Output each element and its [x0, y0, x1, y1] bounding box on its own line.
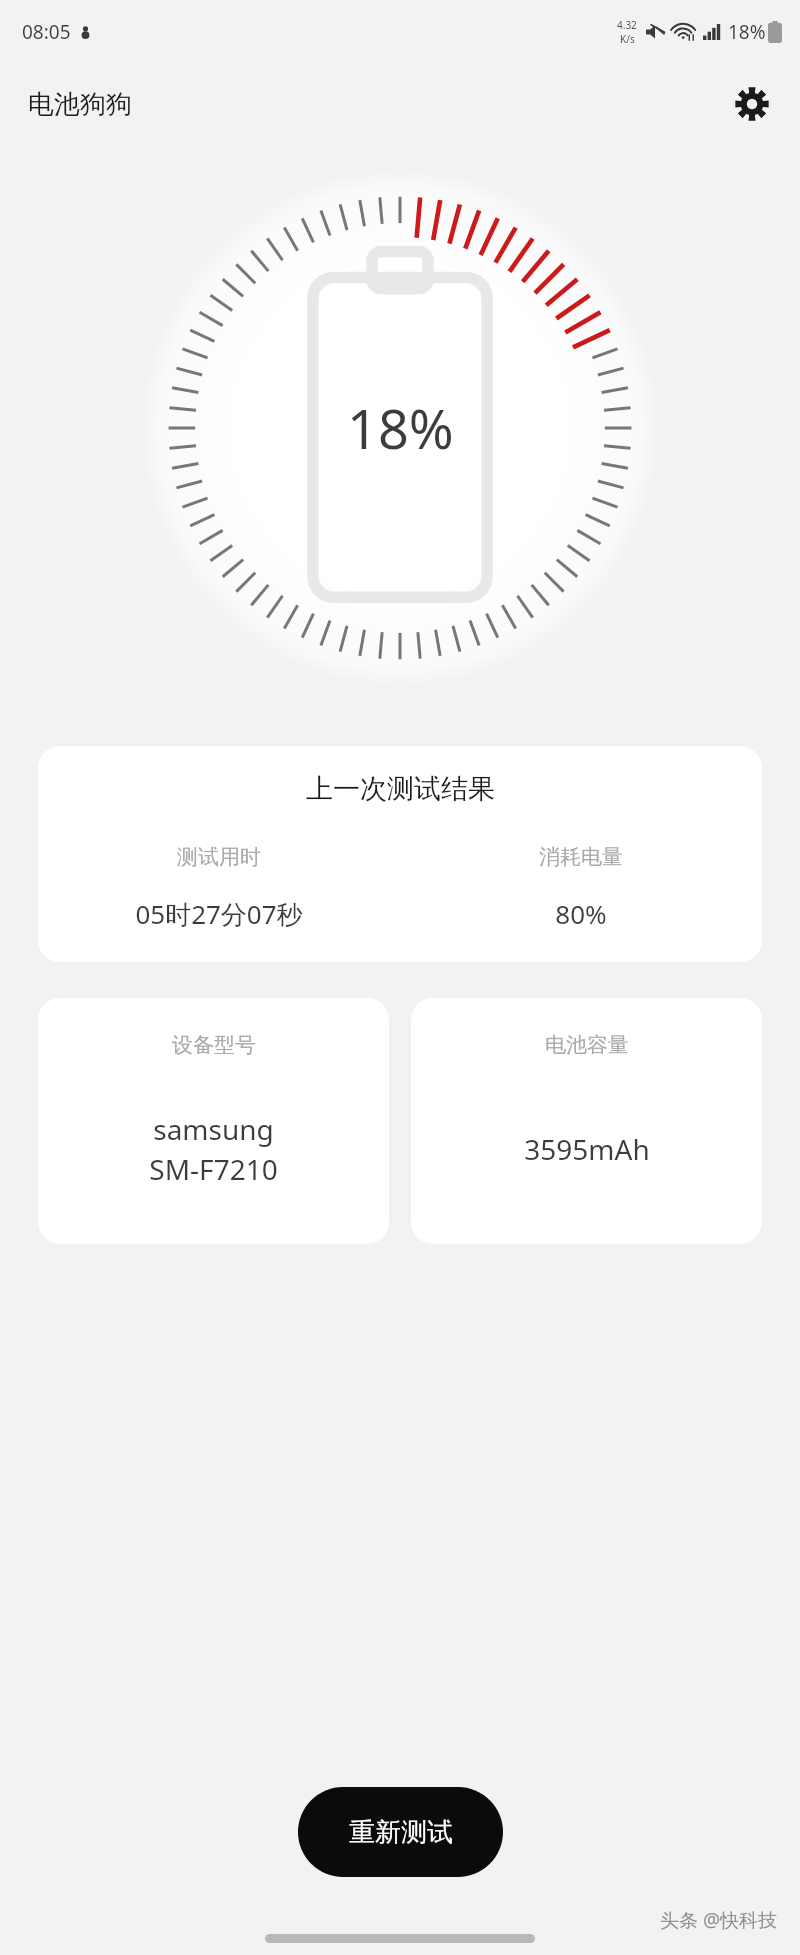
staticText: 电池狗狗	[28, 88, 132, 121]
staticText: 05时27分07秒	[135, 896, 303, 932]
button[interactable]: Settings	[724, 76, 780, 132]
staticText: 电池容量	[545, 1032, 629, 1058]
staticText: 重新测试	[349, 1816, 453, 1849]
staticText: 18%	[728, 19, 766, 45]
staticText: 设备型号	[172, 1032, 256, 1058]
staticText: 测试用时	[177, 844, 261, 870]
staticText: 3595mAh	[524, 1130, 650, 1168]
staticText: 80%	[555, 896, 607, 931]
staticText: 18%	[347, 391, 454, 465]
button[interactable]: 上一次测试结果	[38, 746, 762, 962]
button[interactable]: 电池容量	[411, 998, 762, 1244]
button[interactable]: 重新测试	[298, 1787, 503, 1877]
staticText: samsung SM-F7210	[149, 1110, 278, 1189]
button[interactable]: 设备型号	[38, 998, 389, 1244]
staticText: 上一次测试结果	[306, 772, 495, 806]
staticText: 08:05	[22, 19, 71, 45]
staticText: 4.32	[617, 18, 637, 32]
staticText: 头条 @快科技	[660, 1907, 778, 1933]
staticText: K/s	[620, 32, 635, 46]
staticText: 消耗电量	[539, 844, 623, 870]
